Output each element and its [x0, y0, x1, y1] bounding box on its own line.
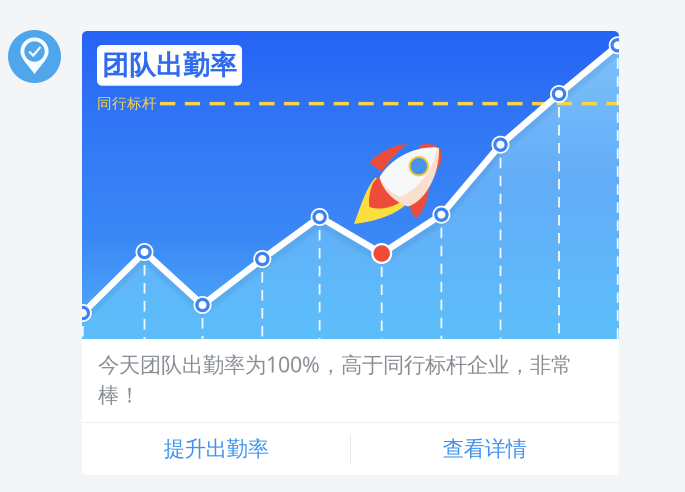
staticText: 团队出勤率: [102, 49, 237, 82]
button[interactable]: 查看详情: [350, 423, 619, 475]
button[interactable]: 提升出勤率: [82, 423, 350, 475]
staticText: 查看详情: [443, 436, 527, 462]
staticText: 今天团队出勤率为100%，高于同行标杆企业，非常棒！: [98, 350, 572, 408]
staticText: 同行标杆: [97, 95, 157, 113]
button[interactable]: 钉钉考勤: [8, 30, 61, 83]
staticText: 提升出勤率: [164, 436, 269, 462]
button[interactable]: 同行标杆: [82, 31, 619, 422]
